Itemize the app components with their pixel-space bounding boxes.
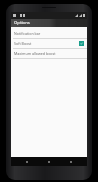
- button[interactable]: Home: [43, 157, 55, 166]
- other: Toggle Soft Boost: [79, 41, 84, 46]
- button[interactable]: Maximum allowed boost: [11, 49, 87, 58]
- button[interactable]: Options: [11, 19, 87, 27]
- button[interactable]: Notification bar: [11, 29, 87, 38]
- button[interactable]: Back: [21, 157, 33, 166]
- staticText: Maximum allowed boost: [14, 51, 84, 56]
- staticText: Notification bar: [14, 31, 84, 36]
- staticText: Options: [14, 20, 30, 26]
- button[interactable]: Recents: [65, 157, 77, 166]
- staticText: Soft Boost: [14, 41, 79, 46]
- button[interactable]: Soft Boost: [11, 39, 87, 48]
